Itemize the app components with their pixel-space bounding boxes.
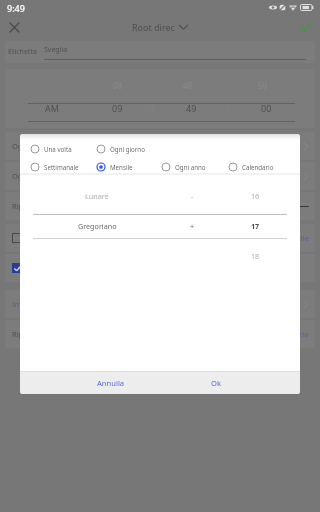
staticText: Annulla (97, 378, 125, 388)
button[interactable]: Vibrazione (12, 224, 309, 252)
staticText: 17 (251, 221, 260, 231)
button[interactable]: Ok (171, 372, 261, 394)
staticText: Ogni giorno (12, 141, 55, 151)
staticText: Root direc (132, 21, 175, 33)
staticText: Ripeti (12, 201, 33, 211)
staticText: - (191, 191, 194, 201)
staticText: Mensile (110, 163, 133, 171)
staticText: 59 (258, 80, 268, 91)
button[interactable]: Ogni giorno (96, 142, 145, 156)
staticText: Gregoriano (78, 221, 117, 231)
staticText: 16 (251, 191, 260, 201)
staticText: 09 (112, 102, 123, 114)
staticText: Sveglie (284, 233, 309, 243)
staticText: Ripeti (12, 329, 33, 339)
staticText: 00 (261, 102, 272, 114)
button[interactable]: Ogni giorno (12, 132, 309, 160)
staticText: Suoneria (277, 329, 309, 339)
button[interactable]: Calendario (228, 160, 274, 174)
staticText: Ogni anno (175, 163, 206, 171)
staticText: + (190, 221, 195, 231)
staticText: Calendario (242, 163, 274, 171)
staticText: : (227, 102, 230, 113)
button[interactable]: Ogni anno (161, 160, 206, 174)
staticText: Ok (211, 378, 221, 388)
staticText: AM (45, 102, 59, 114)
button[interactable]: Impostazioni (12, 290, 309, 318)
staticText: Sveglia (44, 45, 68, 55)
staticText: 18 (251, 251, 260, 261)
staticText: 08 (113, 80, 123, 91)
button[interactable]: Una volta (30, 142, 72, 156)
staticText: 9:49 (7, 2, 25, 14)
button[interactable]: Settimanale (30, 160, 79, 174)
staticText: Vibrazione (30, 233, 68, 243)
staticText: Ogni giorno (12, 171, 55, 181)
button[interactable]: Ripeti (12, 192, 309, 220)
button[interactable]: Root direc (132, 21, 188, 33)
button[interactable]: Ripeti (12, 320, 309, 348)
staticText: Impostazioni (12, 299, 58, 309)
button[interactable]: Annulla (66, 372, 156, 394)
staticText: Ogni giorno (110, 145, 145, 153)
staticText: Lunare (85, 191, 109, 201)
staticText: 48 (183, 80, 193, 91)
staticText: Settimanale (44, 163, 79, 171)
button[interactable]: Close (5, 18, 23, 36)
button[interactable]: Elimina dopo (12, 254, 309, 282)
staticText: 49 (186, 102, 197, 114)
button[interactable]: Ogni giorno (12, 162, 309, 190)
staticText: Una volta (44, 145, 72, 153)
staticText: : (151, 102, 154, 113)
staticText: Etichetta (8, 47, 37, 57)
button[interactable]: Confirm (297, 19, 313, 35)
button[interactable]: Mensile (96, 160, 133, 174)
